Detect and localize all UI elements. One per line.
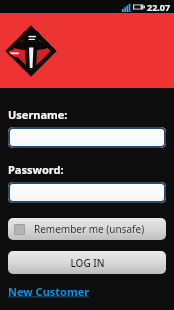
button[interactable] xyxy=(8,127,166,148)
button[interactable]: LOG IN xyxy=(8,251,166,274)
staticText: Username: xyxy=(8,107,68,122)
button[interactable]: Remember me (unsafe) xyxy=(8,218,166,240)
button[interactable]: New Customer xyxy=(8,284,90,299)
button[interactable] xyxy=(8,182,166,203)
staticText: Password: xyxy=(8,162,64,177)
staticText: Remember me (unsafe) xyxy=(34,222,145,236)
staticText: 22.07 xyxy=(147,1,171,13)
staticText: LOG IN xyxy=(70,256,105,270)
